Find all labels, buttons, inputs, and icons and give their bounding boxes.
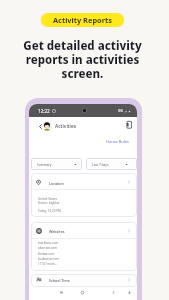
button[interactable]: Location [31, 173, 137, 217]
staticText: 12:22 [38, 108, 50, 114]
button[interactable]: House Rules [104, 137, 131, 145]
staticText: Websites [49, 229, 65, 234]
button[interactable]: Activity Reports [41, 13, 124, 27]
button[interactable]: School Time [31, 274, 137, 287]
staticText: marlboro.com [38, 241, 59, 245]
button[interactable]: Home [79, 289, 86, 296]
button[interactable]: Websites [31, 222, 137, 271]
staticText: School Time [49, 278, 70, 283]
button[interactable]: Voice assistant [126, 289, 133, 296]
button[interactable]: Back [37, 123, 44, 130]
staticText: budweiser.com [38, 257, 60, 261]
button[interactable]: Contact profile [125, 120, 134, 129]
staticText: abortion.com [38, 246, 57, 250]
staticText: 96 [118, 108, 123, 114]
button[interactable]: Last 7 days [86, 158, 137, 170]
staticText: Summary [37, 163, 52, 167]
staticText: Location [49, 181, 64, 186]
staticText: Activities [55, 123, 77, 130]
staticText: Today, 12:20 PM [38, 209, 61, 213]
button[interactable]: Recent apps [58, 289, 65, 296]
staticText: ( 114 ) more... [38, 262, 58, 266]
staticText: United States [38, 197, 57, 201]
staticText: Activity Reports [53, 15, 112, 25]
button[interactable]: Back [110, 289, 117, 296]
staticText: Get detailed activity reports in activit… [0, 38, 167, 81]
staticText: Last 7 days [92, 163, 109, 167]
staticText: House Rules [106, 139, 129, 144]
button[interactable]: Summary [31, 158, 82, 170]
staticText: thelaw.com [38, 252, 55, 256]
staticText: Device: bigblue [38, 201, 60, 205]
